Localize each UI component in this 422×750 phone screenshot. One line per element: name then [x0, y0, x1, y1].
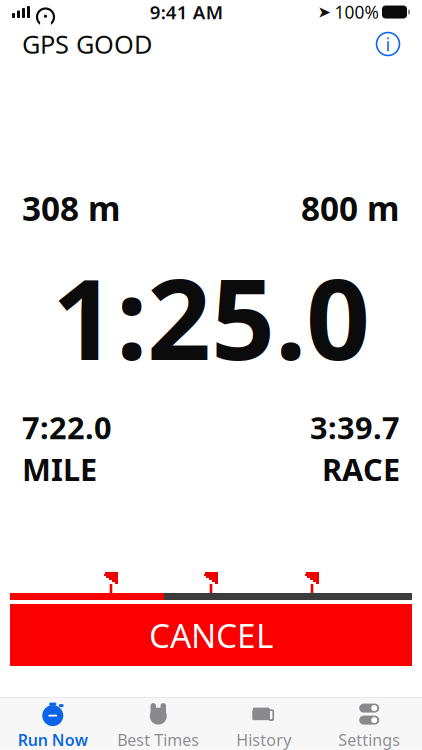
button[interactable]: Info [368, 24, 408, 64]
button[interactable]: CANCEL [10, 604, 412, 666]
staticText: RACE [322, 449, 400, 489]
staticText: 100% [334, 0, 378, 23]
staticText: CANCEL [149, 613, 273, 657]
staticText: 7:22.0 [22, 407, 112, 448]
staticText: Settings [338, 729, 400, 750]
staticText: 308 m [22, 186, 121, 230]
staticText: i [385, 32, 390, 56]
button[interactable]: History [211, 697, 316, 750]
staticText: 9:41 AM [150, 0, 223, 24]
button[interactable]: Settings [316, 697, 422, 750]
staticText: 800 m [301, 186, 400, 230]
staticText: 1:25.0 [52, 242, 370, 391]
staticText: History [236, 729, 291, 750]
staticText: GPS GOOD [22, 27, 152, 61]
staticText: 3:39.7 [310, 407, 400, 448]
staticText: Best Times [117, 729, 199, 750]
button[interactable]: Best Times [105, 697, 211, 750]
button[interactable]: Run Now [0, 697, 105, 750]
staticText: ➤ [317, 3, 330, 21]
staticText: MILE [22, 449, 97, 489]
staticText: Run Now [18, 729, 88, 750]
